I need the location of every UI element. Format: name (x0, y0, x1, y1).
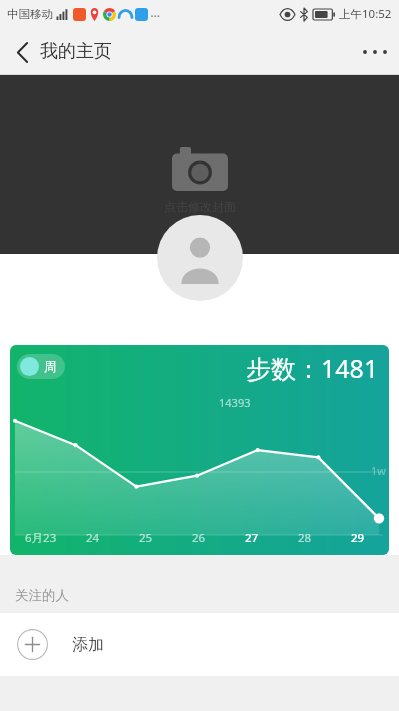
staticText: 我的主页 (40, 40, 112, 63)
button[interactable]: Profile photo (157, 215, 243, 301)
button[interactable]: 周 (17, 354, 65, 379)
staticText: 27 (245, 530, 259, 546)
staticText: 24 (86, 530, 100, 546)
button[interactable]: 添加 (0, 613, 399, 676)
staticText: 步数：1481 (246, 351, 379, 385)
staticText: 25 (139, 530, 153, 546)
button[interactable]: Back (0, 30, 44, 74)
staticText: 28 (298, 530, 312, 546)
staticText: 26 (192, 530, 206, 546)
staticText: 关注的人 (15, 587, 69, 604)
staticText: 添加 (72, 635, 104, 655)
staticText: 中国移动 (7, 7, 53, 21)
staticText: 6月23 (25, 530, 57, 546)
staticText: 29 (351, 530, 365, 546)
button[interactable]: 周 (10, 345, 389, 555)
staticText: 14393 (219, 395, 251, 410)
staticText: 点击修改封面 (164, 199, 236, 214)
staticText: 上午10:52 (339, 6, 392, 22)
button[interactable]: Change cover photo (0, 75, 399, 254)
staticText: 1w (371, 463, 386, 478)
staticText: 周 (44, 359, 57, 375)
button[interactable]: More options (351, 28, 399, 75)
